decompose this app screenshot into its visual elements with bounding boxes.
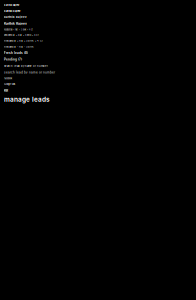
- staticText: Google ads: [4, 83, 15, 86]
- staticText: manage leads: [4, 95, 50, 103]
- staticText: Residential • Flat • 3 BHK • 4 Cr: [4, 34, 39, 36]
- staticText: search lead by name or number: [4, 64, 48, 67]
- staticText: Fresh leads (8): [4, 51, 28, 55]
- staticText: Pending (7): [4, 58, 22, 61]
- staticText: facebook: [4, 77, 12, 80]
- staticText: Residential • Flat • 3 BHK • 4 Cr: [4, 29, 33, 31]
- staticText: Karthik Rajeev: [4, 4, 19, 7]
- staticText: Residential • Flat • 3 BHK • 4 Cr: [4, 39, 43, 42]
- staticText: Karthik Rajeev: [4, 22, 27, 26]
- staticText: KR: [4, 89, 8, 92]
- staticText: Karthik Rajeev: [4, 10, 20, 12]
- staticText: search lead by name or number: [4, 71, 55, 74]
- staticText: Karthik Rajeev: [4, 15, 27, 19]
- staticText: Residential - Flat - 3 BHK: [4, 45, 34, 48]
